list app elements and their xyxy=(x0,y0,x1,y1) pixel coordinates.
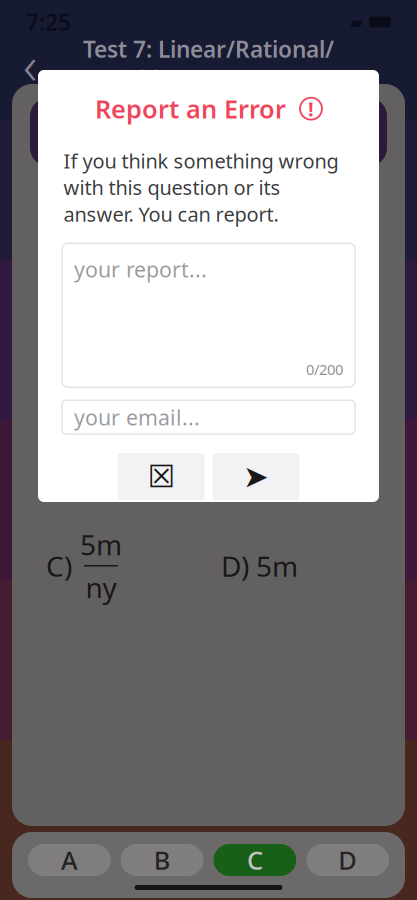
staticText: D) 5m xyxy=(221,547,298,584)
button[interactable]: D xyxy=(306,844,389,876)
staticText: ny xyxy=(85,568,116,606)
staticText: D xyxy=(338,843,357,877)
button[interactable]: C xyxy=(213,844,296,876)
staticText: 5m xyxy=(80,526,122,563)
staticText: ▰ xyxy=(350,12,363,32)
staticText: your email... xyxy=(74,403,200,431)
staticText: B) kn xyxy=(221,437,286,474)
button[interactable]: B xyxy=(121,844,204,876)
staticText: your report... xyxy=(74,255,207,283)
staticText: ➤ xyxy=(243,459,269,494)
staticText: 5n xyxy=(80,416,113,453)
button[interactable]: Back xyxy=(8,42,52,86)
staticText: A xyxy=(61,843,78,877)
staticText: ☒ xyxy=(147,459,174,494)
button[interactable]: A xyxy=(28,844,111,876)
staticText: 7:25 xyxy=(26,7,71,37)
staticText: If you think something wrong with this q… xyxy=(63,147,338,227)
button[interactable]: Send report xyxy=(212,453,299,500)
staticText: ‹ xyxy=(23,29,37,99)
staticText: B xyxy=(154,843,171,877)
staticText: 0/200 xyxy=(306,360,343,379)
staticText: C) xyxy=(46,547,72,584)
staticText: Test 7: Linear/Rational/Variable xyxy=(83,34,334,94)
staticText: C xyxy=(247,843,263,877)
button[interactable]: Close xyxy=(117,453,204,500)
staticText: ! xyxy=(308,95,314,122)
staticText: Report an Error xyxy=(95,92,286,125)
